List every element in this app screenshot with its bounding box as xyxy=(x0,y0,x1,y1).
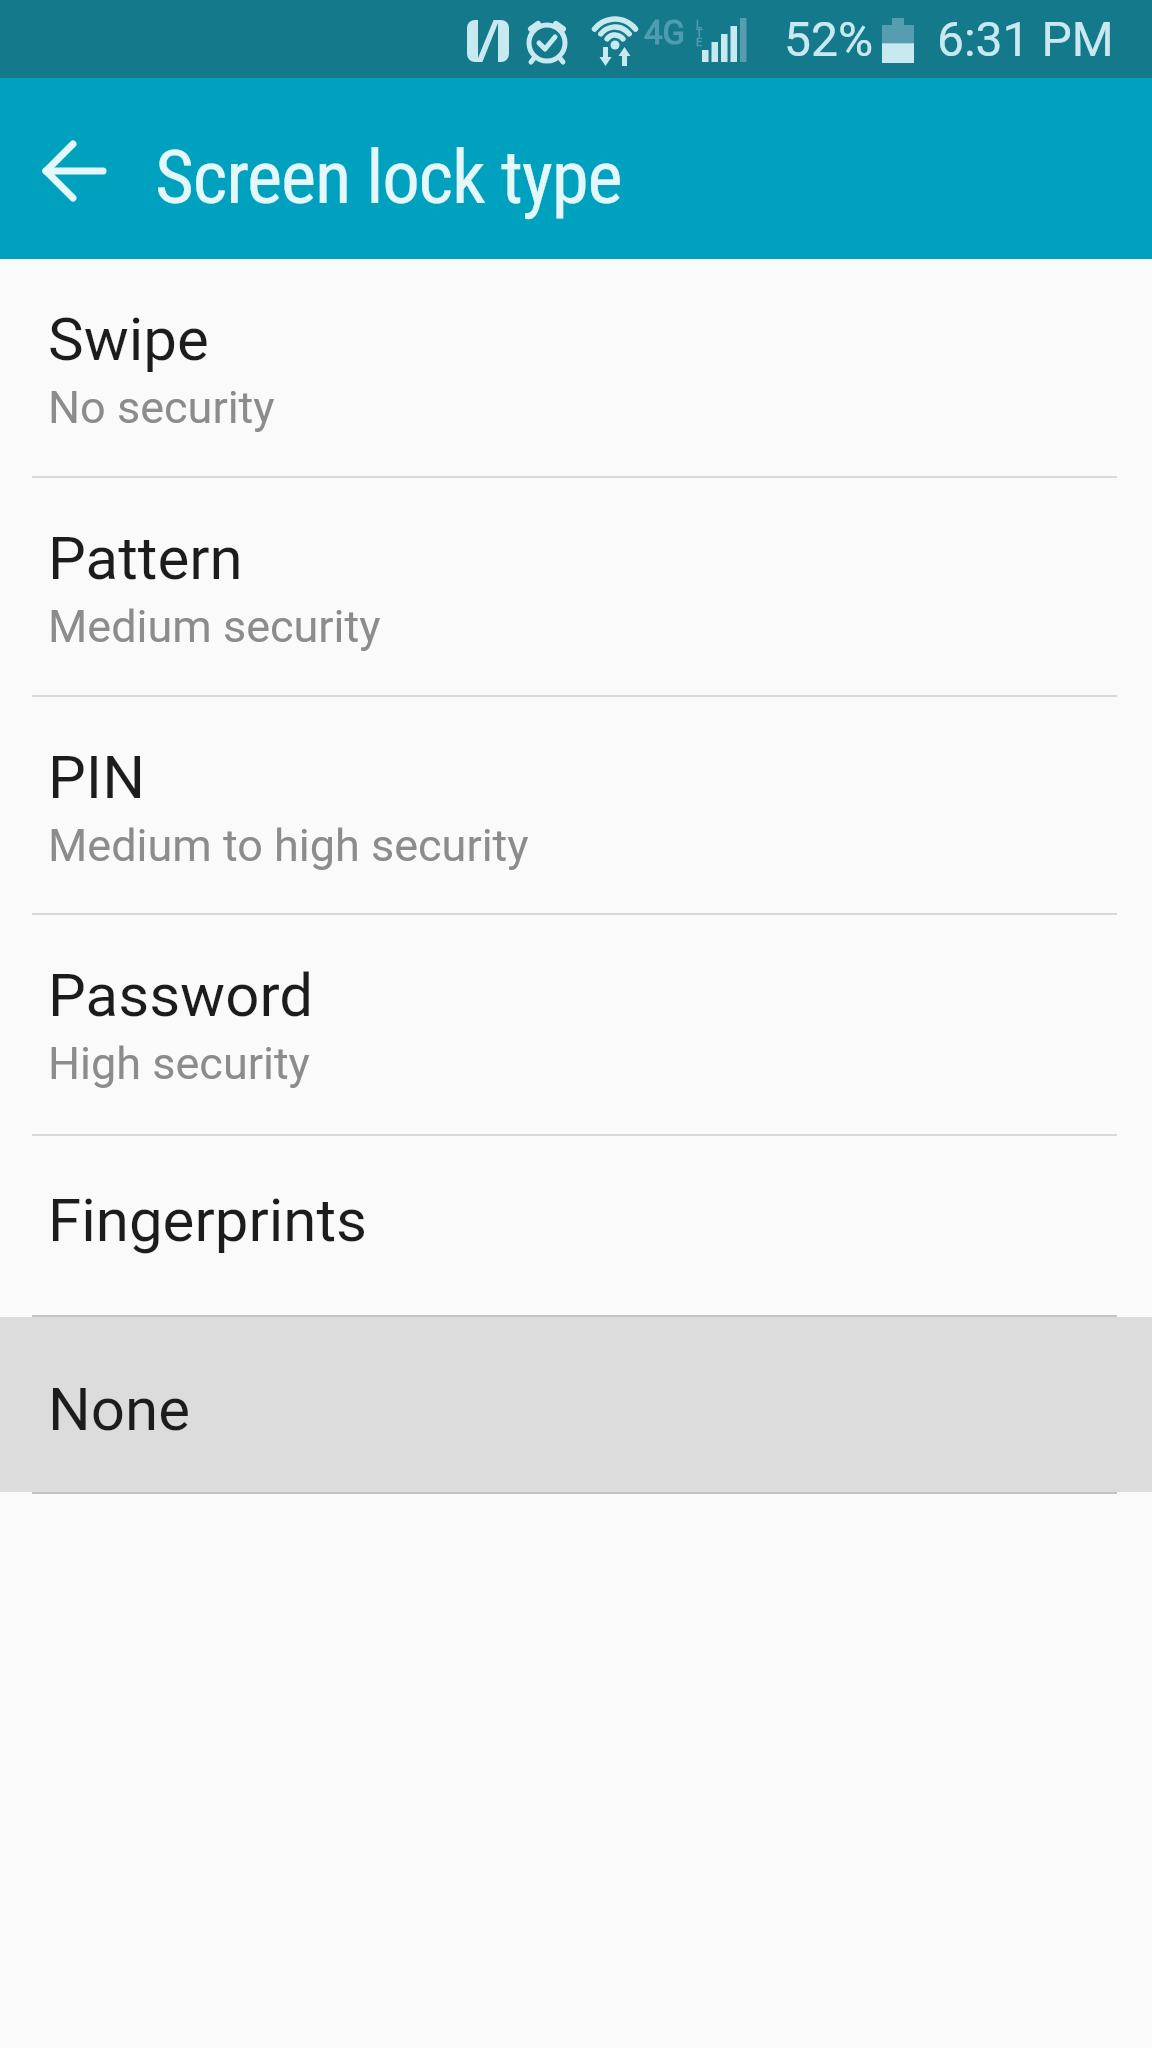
button[interactable]: None xyxy=(0,1317,1152,1492)
staticText: No security xyxy=(48,381,275,434)
staticText: Screen lock type xyxy=(155,133,622,221)
staticText: Swipe xyxy=(48,304,209,374)
staticText: None xyxy=(48,1374,190,1444)
staticText: 4G xyxy=(644,13,686,52)
staticText: High security xyxy=(48,1037,310,1090)
staticText: Password xyxy=(48,960,314,1030)
button[interactable] xyxy=(34,129,114,209)
button[interactable]: PIN xyxy=(0,697,1152,913)
staticText: Medium security xyxy=(48,600,381,653)
staticText: Fingerprints xyxy=(48,1185,368,1255)
button[interactable]: Fingerprints xyxy=(0,1136,1152,1315)
button[interactable]: Swipe xyxy=(0,259,1152,476)
staticText: 52% xyxy=(784,11,874,67)
staticText: Pattern xyxy=(48,523,243,593)
staticText: L T E xyxy=(696,18,703,49)
staticText: 6:31 PM xyxy=(937,11,1114,67)
staticText: PIN xyxy=(48,742,145,812)
button[interactable]: Pattern xyxy=(0,478,1152,695)
button[interactable]: Password xyxy=(0,915,1152,1134)
staticText: Medium to high security xyxy=(48,819,529,872)
